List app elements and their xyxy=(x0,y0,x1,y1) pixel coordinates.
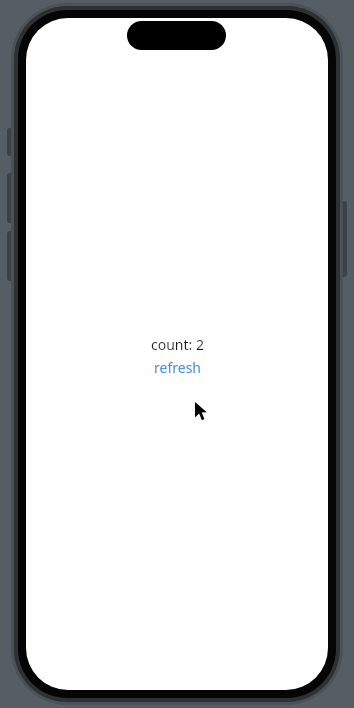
staticText: count: 2 xyxy=(151,335,204,354)
button[interactable]: refresh xyxy=(154,358,201,377)
staticText: refresh xyxy=(154,358,201,377)
